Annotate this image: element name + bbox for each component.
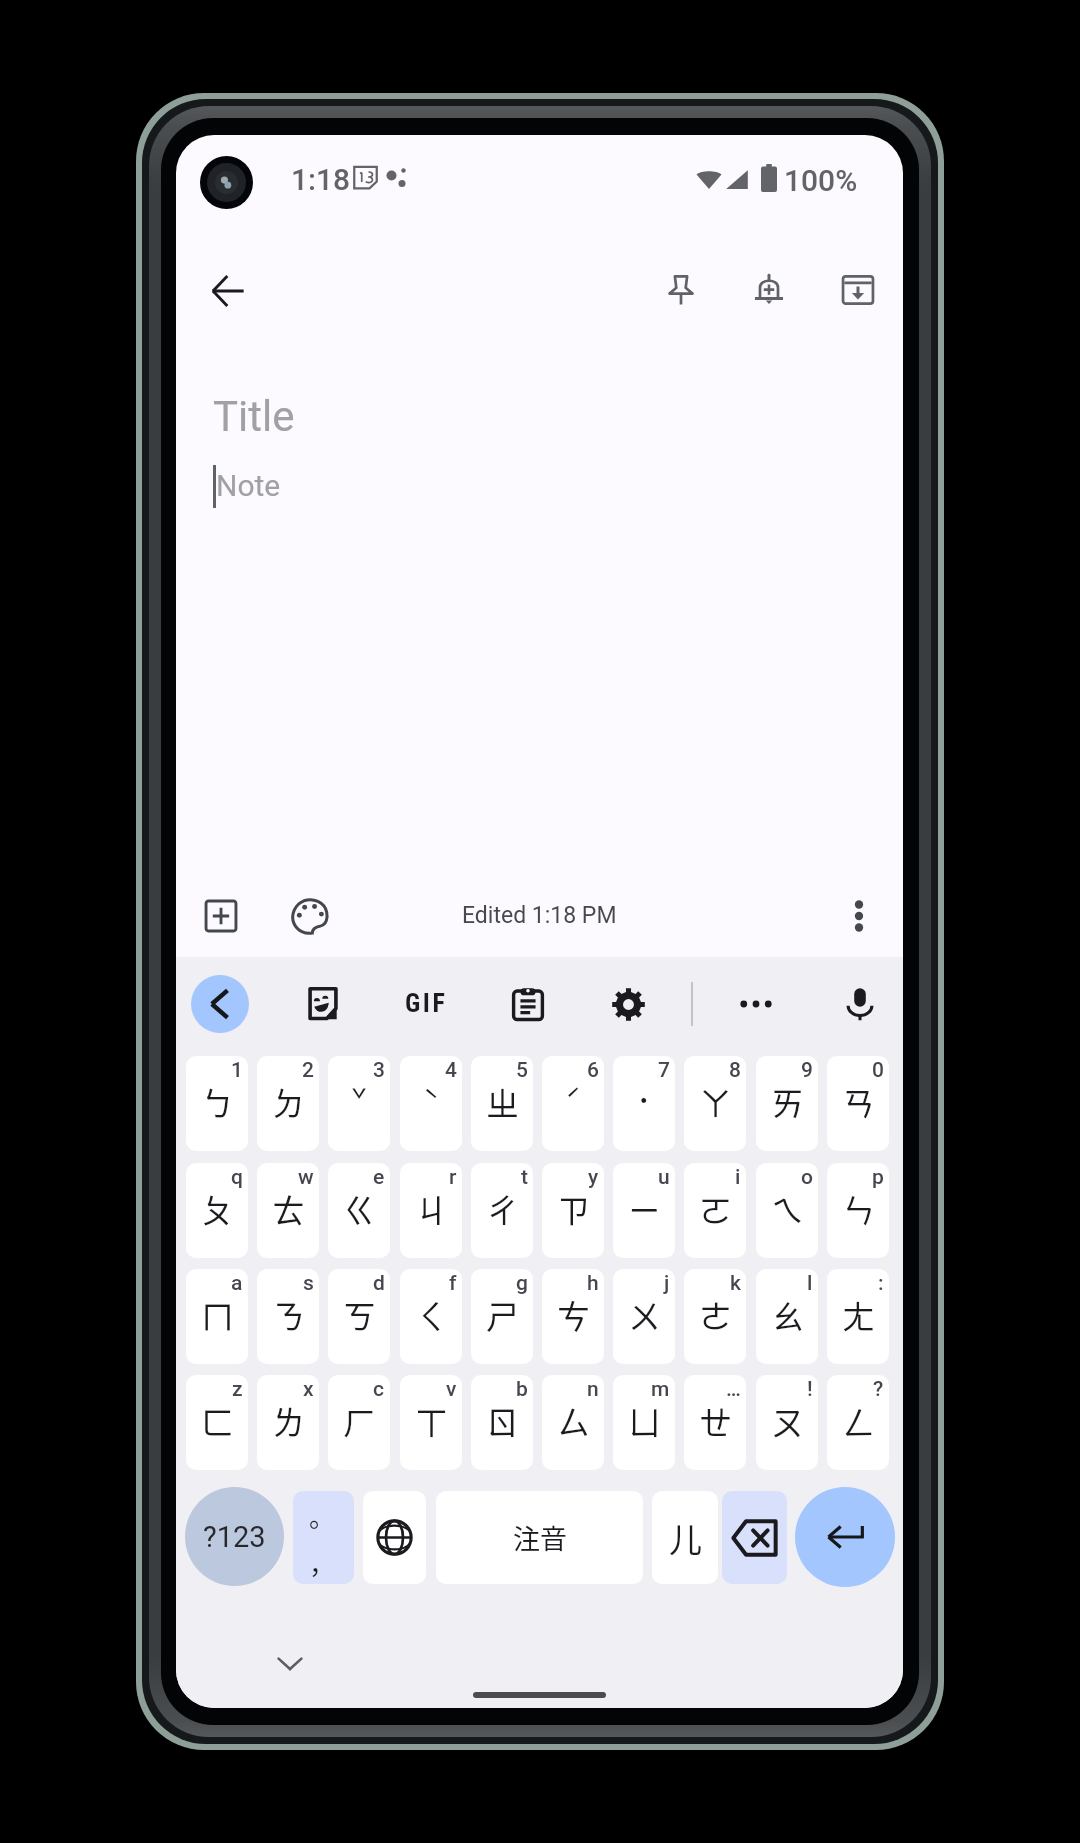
button[interactable]: k [684,1269,746,1364]
staticText: ˊ [565,1080,582,1119]
button[interactable]: y [542,1163,604,1258]
button[interactable]: v [400,1375,462,1470]
button[interactable]: 3 [328,1056,390,1151]
button[interactable]: 6 [542,1056,604,1151]
button[interactable]: z [186,1375,248,1470]
button[interactable]: Back [191,975,249,1033]
staticText: c [373,1377,385,1402]
staticText: … [726,1377,741,1402]
button[interactable]: Settings [599,975,657,1033]
staticText: f [449,1271,457,1296]
button[interactable]: g [471,1269,533,1364]
button[interactable]: q [186,1163,248,1258]
button[interactable]: p [827,1163,889,1258]
button[interactable]: e [328,1163,390,1258]
staticText: r [449,1165,457,1190]
button[interactable]: Back [198,261,258,321]
button[interactable]: Pin note [651,260,711,320]
button[interactable]: More options [727,975,785,1033]
button[interactable]: Archive [828,260,888,320]
button[interactable]: ! [756,1375,818,1470]
staticText: ㄣ [842,1185,875,1233]
staticText: 4 [445,1058,457,1083]
button[interactable]: a [186,1269,248,1364]
staticText: n [587,1377,599,1402]
staticText: k [730,1271,741,1296]
staticText: v [446,1377,457,1402]
staticText: ˋ [423,1080,440,1119]
staticText: ㄥ [842,1397,875,1445]
staticText: ㄘ [557,1291,590,1339]
button[interactable]: Voice input [831,975,889,1033]
staticText: ㄨ [628,1291,661,1339]
button[interactable]: GIF [386,963,466,1043]
staticText: u [658,1165,670,1190]
button[interactable]: b [471,1375,533,1470]
staticText: ㄍ [343,1185,376,1233]
button[interactable]: x [257,1375,319,1470]
button[interactable]: j [613,1269,675,1364]
button[interactable]: 7 [613,1056,675,1151]
staticText: l [807,1271,813,1296]
button[interactable]: f [400,1269,462,1364]
button[interactable]: 4 [400,1056,462,1151]
staticText: ㄟ [771,1185,804,1233]
button[interactable]: 儿 [652,1491,718,1584]
button[interactable]: d [328,1269,390,1364]
button[interactable]: 9 [756,1056,818,1151]
staticText: ˇ [351,1080,368,1119]
button[interactable]: 8 [684,1056,746,1151]
button[interactable]: ? [827,1375,889,1470]
button[interactable]: ?123 [185,1487,284,1586]
button[interactable]: h [542,1269,604,1364]
button[interactable]: Switch language [363,1491,426,1584]
button[interactable]: 2 [257,1056,319,1151]
staticText: 9 [801,1058,813,1083]
button[interactable]: 注音 [436,1491,643,1584]
button[interactable]: Enter [795,1487,895,1587]
button[interactable]: … [684,1375,746,1470]
staticText: ㄅ [201,1078,234,1126]
button[interactable]: o [756,1163,818,1258]
staticText: ㄎ [343,1291,376,1339]
button[interactable]: m [613,1375,675,1470]
button[interactable]: Clipboard [499,975,557,1033]
button[interactable]: c [328,1375,390,1470]
staticText: p [872,1165,884,1190]
staticText: 1 [231,1058,243,1083]
button[interactable]: i [684,1163,746,1258]
button[interactable]: Hide keyboard [262,1636,318,1692]
staticText: y [588,1165,599,1190]
staticText: b [516,1377,528,1402]
button[interactable]: : [827,1269,889,1364]
staticText: j [664,1271,670,1296]
button[interactable]: Change colour [280,886,339,945]
button[interactable]: w [257,1163,319,1258]
button[interactable]: Reminder [739,260,799,320]
staticText: 100% [784,163,858,198]
staticText: m [651,1377,670,1402]
button[interactable]: r [400,1163,462,1258]
button[interactable]: More options [829,886,888,945]
staticText: ㄔ [486,1185,519,1233]
button[interactable]: Stickers [294,975,352,1033]
staticText: Edited 1:18 PM [462,902,617,929]
button[interactable]: Add [191,886,250,945]
staticText: Title [213,392,295,441]
staticText: ㄏ [343,1397,376,1445]
button[interactable]: u [613,1163,675,1258]
staticText: ㄊ [272,1185,305,1233]
button[interactable]: 5 [471,1056,533,1151]
button[interactable]: n [542,1375,604,1470]
button[interactable]: 。 [293,1491,354,1584]
button[interactable]: s [257,1269,319,1364]
button[interactable]: l [756,1269,818,1364]
button[interactable]: 1 [186,1056,248,1151]
staticText: GIF [405,988,448,1018]
button[interactable]: Backspace [722,1491,787,1584]
button[interactable]: t [471,1163,533,1258]
staticText: ㄓ [486,1078,519,1126]
button[interactable]: 0 [827,1056,889,1151]
staticText: a [231,1271,243,1296]
staticText: 2 [302,1058,314,1083]
